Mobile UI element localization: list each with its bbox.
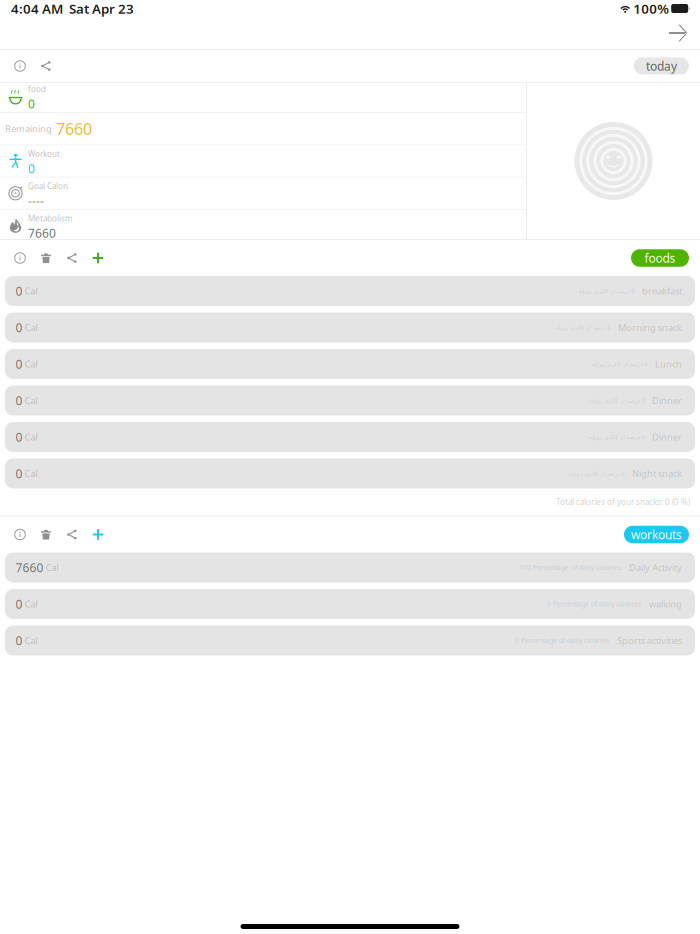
button[interactable]: foods [631,249,689,267]
staticText: 0 [15,356,22,372]
staticText: 0 [15,392,22,408]
staticText: Cal [24,598,37,610]
button[interactable]: Share [33,53,59,79]
staticText: Dinner [652,431,682,443]
staticText: Cal [24,467,37,480]
button[interactable]: workouts [624,526,689,543]
staticText: 0 [15,319,22,335]
button[interactable]: Delete [33,245,59,271]
button[interactable]: 0 [5,385,695,415]
staticText: Lunch [655,358,682,370]
staticText: 7660 [56,118,92,139]
staticText: Metabolism [28,213,72,224]
staticText: Goal Calori [28,181,68,191]
button[interactable]: Share [59,245,85,271]
button[interactable]: 0 [5,422,695,452]
button[interactable]: 7660 [5,552,695,582]
staticText: 0 [28,96,35,112]
staticText: 4:04 AM [11,0,63,17]
staticText: Cal [24,358,37,370]
staticText: 0 Percentage of daily calories [515,636,609,645]
staticText: today [646,58,677,74]
staticText: Sat Apr 23 [69,0,134,17]
staticText [22,285,24,297]
staticText: Workout [28,148,60,159]
staticText: 7660 [28,225,56,241]
staticText: 0 [28,161,35,176]
button[interactable]: Share [59,521,85,547]
staticText: 0 [15,283,22,299]
button[interactable]: Add food [85,245,111,271]
staticText: 0 درصد از کالری روزانه [554,324,610,331]
staticText [22,321,24,334]
staticText: 0 [15,596,22,612]
staticText: walking [649,598,682,610]
button[interactable]: Add workout [85,521,111,547]
button[interactable]: Information [7,245,33,271]
staticText: 0 درصد از کالری روزانه [588,433,644,441]
staticText: ---- [28,193,44,209]
staticText: Morning snack [618,321,682,334]
staticText: Cal [24,394,37,407]
staticText: 0 [15,632,22,648]
button[interactable]: 0 [5,589,695,619]
staticText: 100 Percentage of daily calories [519,563,621,572]
staticText: Cal [24,321,37,334]
button[interactable]: today [634,57,689,74]
staticText: Cal [24,285,37,297]
staticText: 0 درصد از کالری روزانه [588,397,644,404]
staticText [22,598,24,610]
staticText: Cal [24,634,37,647]
staticText: workouts [631,526,682,542]
staticText: 7660 [15,559,43,575]
button[interactable]: Next [662,17,694,49]
button[interactable]: Information [7,53,33,79]
staticText [22,394,24,407]
staticText: 0 [15,465,22,481]
button[interactable]: 0 [5,312,695,342]
staticText: Total calories of your snacks: 0 (0 %) [556,497,690,507]
staticText: food [28,84,46,94]
staticText: Remaining [5,122,52,135]
staticText: Dinner [652,394,682,407]
staticText: 0 درصد از کالری روزانه [578,287,634,295]
staticText: 0 درصد از کالری روزانه [568,470,624,477]
staticText: Daily Activity [629,561,682,574]
staticText: 0 درصد از کالری روزانه [591,360,647,368]
staticText: Sports activities [617,634,682,647]
staticText: 0 Percentage of daily calories [547,600,641,608]
staticText: Cal [45,561,58,574]
staticText [22,431,24,443]
button[interactable]: 0 [5,625,695,655]
staticText: 100% [633,0,669,17]
button[interactable]: 0 [5,458,695,488]
staticText: 0 [15,429,22,445]
button[interactable]: Delete [33,521,59,547]
button[interactable]: Information [7,521,33,547]
staticText: Night snack [632,467,682,480]
staticText: breakfast [642,285,682,297]
staticText [22,358,24,370]
staticText [22,467,24,480]
button[interactable]: 0 [5,276,695,306]
staticText [22,634,24,647]
button[interactable]: 0 [5,349,695,379]
